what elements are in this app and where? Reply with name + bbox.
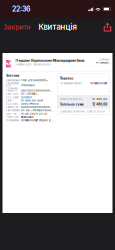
staticText: Сформовано автоматично, підпис не потріб… [60,110,105,113]
staticText: Статус операції [5,115,19,119]
staticText: Банк платника [5,109,19,112]
staticText: Найменування отримувача [5,79,19,85]
staticText: Сума (без комісії) [60,98,83,101]
staticText: Призначення платежу [60,82,82,85]
staticText: Код отримувача за ЄДРПОУ [5,84,19,90]
staticText: АТ КБ «ПРИВАТБАНК» [21,109,53,112]
staticText: Закрити [3,23,30,31]
button[interactable]: Share [100,20,115,34]
staticText: Загальна сума [60,102,84,106]
staticText: 12 480,00 [92,98,107,101]
staticText: Квитанція [99,58,109,61]
staticText: виконано [21,115,34,119]
staticText: Квитанція [38,22,76,32]
staticText: 41739865 [21,84,35,87]
staticText: UA903006140000026 [21,106,53,109]
staticText: ТОВ «ТЕХНОЛОГІЇ» [21,79,48,82]
staticText: Перший Український Міжнародний банк [15,58,84,63]
staticText: оплата послуг згідно рах. [21,119,53,122]
staticText: Код платника [5,102,19,105]
staticText: пумб [6,59,12,69]
staticText: Рахунок платника [5,106,19,109]
staticText: АТ «ПУМБ» [21,92,38,95]
staticText: Переказ [60,76,74,80]
staticText: 22:36 [12,5,30,13]
staticText: Дата і час [5,112,16,115]
staticText: 12 480,00 UAH [21,99,43,102]
staticText: оплата послуг [90,82,107,85]
staticText: Платник [5,74,19,78]
staticText: 12.06.2024 22:31 [21,112,47,115]
staticText: № 1284593217 [96,61,109,64]
staticText: Банк отримувача [5,92,19,95]
staticText: 3092714856 [21,102,39,105]
staticText: Рахунок отримувача [5,89,19,92]
staticText: Призначення [5,119,18,122]
staticText: 334851 [21,96,32,99]
staticText: UA213052990000026 [21,89,53,92]
staticText: Код банку [5,96,18,99]
staticText: Квитанція про переказ коштів [15,63,50,66]
staticText: Сума [5,99,11,102]
staticText: 12 480,00 [92,102,107,106]
button[interactable]: Закрити [0,20,34,34]
